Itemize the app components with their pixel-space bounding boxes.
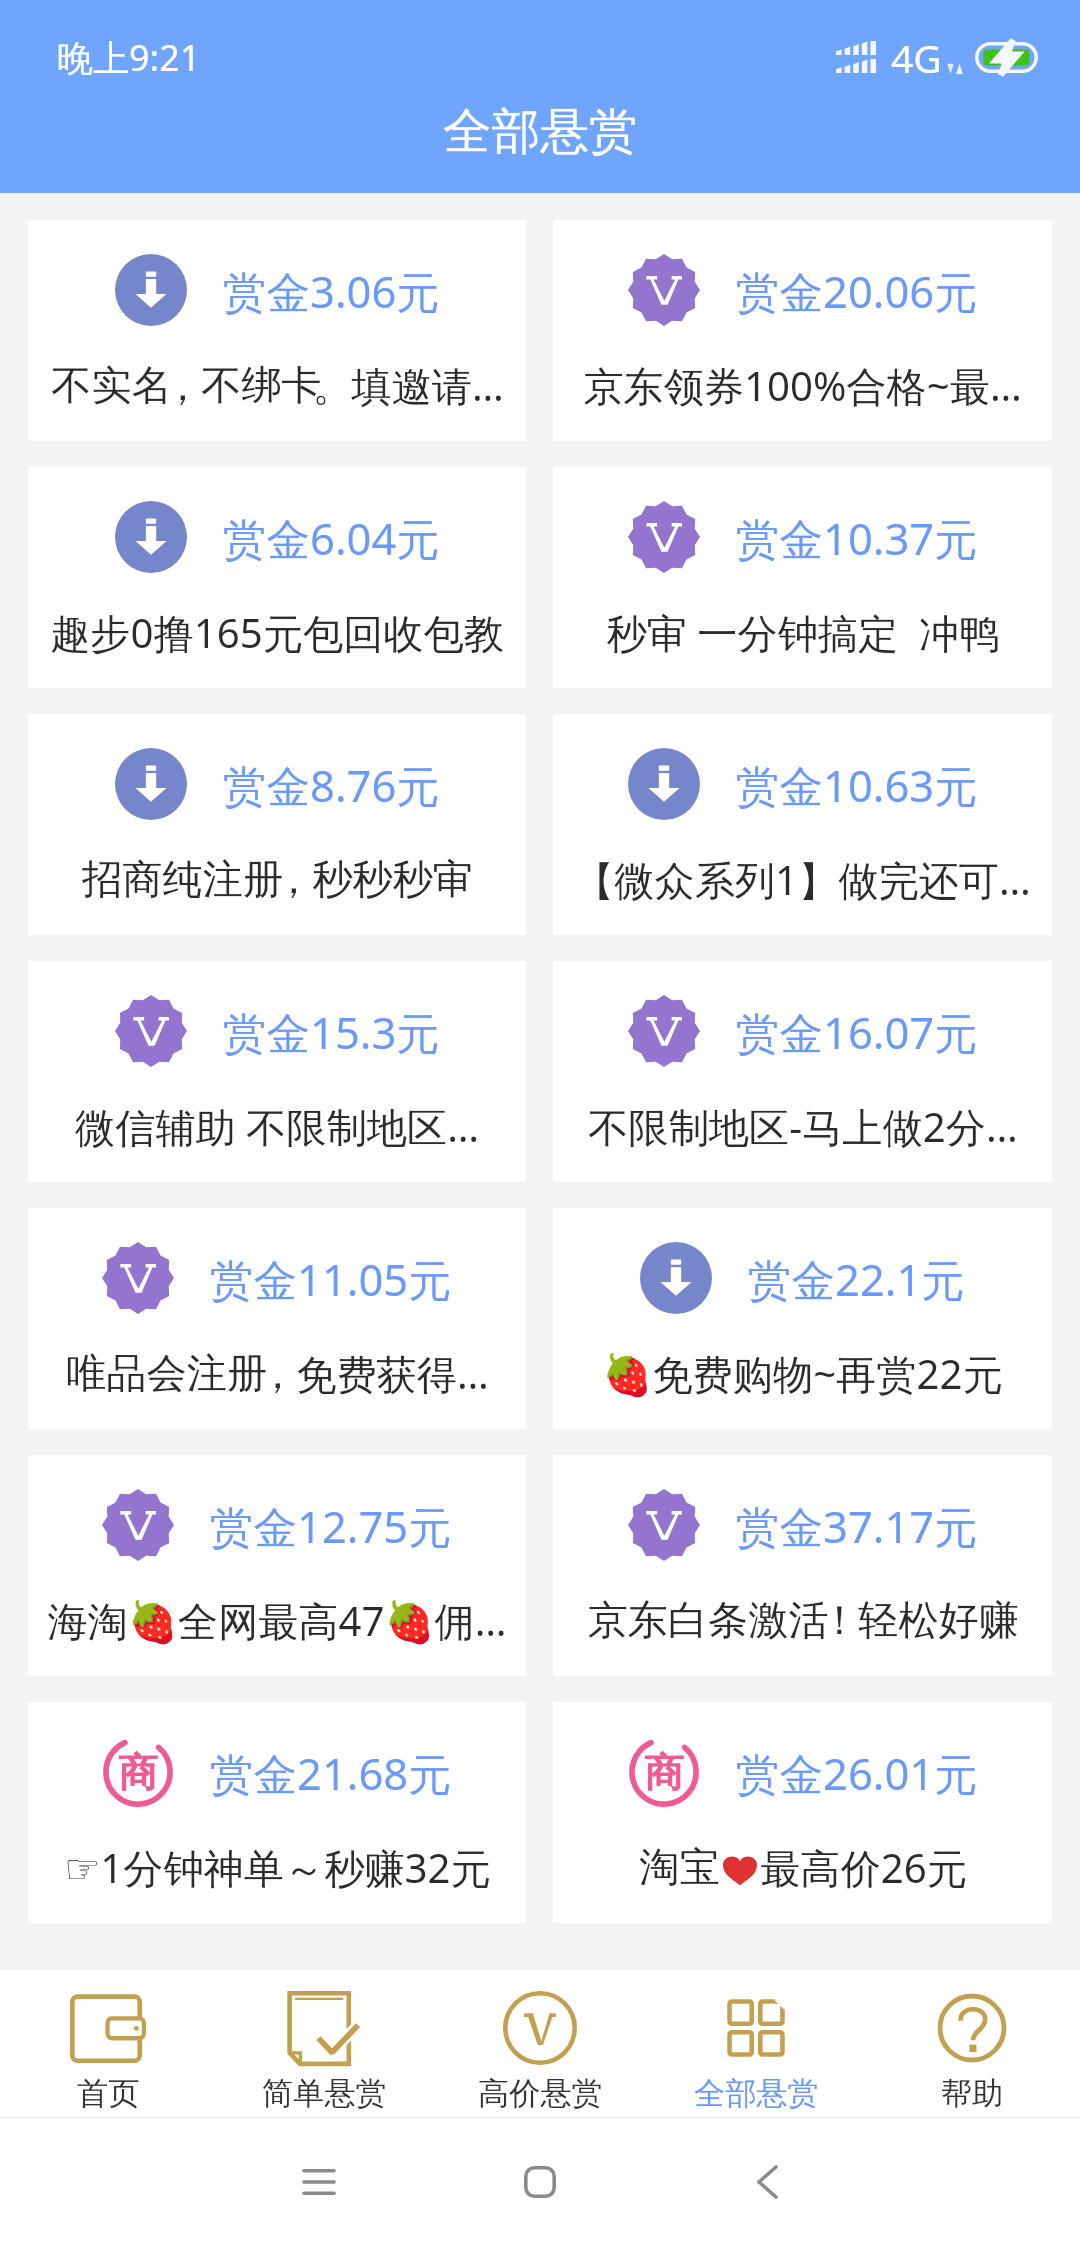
- staticText: 【微众系列1】做完还可…: [574, 852, 1031, 907]
- staticText: 免费获得…: [296, 1346, 489, 1401]
- button[interactable]: Back: [722, 2122, 812, 2242]
- staticText: 晚上9:21: [57, 33, 201, 82]
- staticText: ，: [257, 1349, 286, 1400]
- staticText: 赏金15.3元: [223, 1002, 440, 1061]
- staticText: 赏金8.76元: [223, 755, 440, 814]
- staticText: 微信辅助 不限制地区…: [75, 1099, 479, 1154]
- button[interactable]: 首页: [0, 1975, 216, 2113]
- staticText: 秒审 一分钟搞定 冲鸭: [606, 605, 1000, 660]
- staticText: 赏金22.1元: [748, 1249, 965, 1308]
- button[interactable]: 全部悬赏: [648, 1975, 864, 2113]
- button[interactable]: 赏金10.63元: [553, 714, 1052, 935]
- button[interactable]: 商: [28, 1702, 526, 1923]
- staticText: 帮助: [941, 2074, 1004, 2113]
- staticText: 赏金6.04元: [223, 508, 440, 567]
- button[interactable]: 帮助: [864, 1975, 1080, 2113]
- staticText: 4G: [891, 31, 942, 84]
- staticText: 京东领券100%合格~最…: [583, 358, 1022, 413]
- staticText: ，: [162, 361, 191, 412]
- staticText: ，: [273, 854, 302, 905]
- staticText: 赏金21.68元: [210, 1743, 452, 1802]
- staticText: 轻松好赚: [858, 1595, 1019, 1646]
- button[interactable]: 赏金20.06元: [553, 220, 1052, 441]
- staticText: 赏金11.05元: [210, 1249, 452, 1308]
- staticText: 不实名: [51, 360, 172, 411]
- staticText: 赏金10.63元: [736, 755, 978, 814]
- button[interactable]: 赏金6.04元: [28, 467, 526, 688]
- staticText: ！: [819, 1595, 848, 1646]
- staticText: 赏金12.75元: [210, 1496, 452, 1555]
- staticText: 赏金26.01元: [736, 1743, 978, 1802]
- button[interactable]: 赏金16.07元: [553, 961, 1052, 1182]
- staticText: 赏金3.06元: [223, 261, 440, 320]
- button[interactable]: 赏金15.3元: [28, 961, 526, 1182]
- staticText: 趣步0撸165元包回收包教: [50, 605, 504, 660]
- button[interactable]: 赏金8.76元: [28, 714, 526, 935]
- staticText: 赏金20.06元: [736, 261, 978, 320]
- staticText: ☞1分钟神单～秒赚32元: [64, 1840, 491, 1895]
- staticText: 最高价26元: [760, 1840, 967, 1895]
- button[interactable]: 赏金22.1元: [553, 1208, 1052, 1429]
- button[interactable]: 高价悬赏: [432, 1975, 648, 2113]
- button[interactable]: 赏金3.06元: [28, 220, 526, 441]
- staticText: 京东白条激活: [587, 1595, 829, 1646]
- button[interactable]: Recent apps: [274, 2122, 364, 2242]
- staticText: 高价悬赏: [478, 2074, 603, 2113]
- staticText: 全部悬赏: [443, 101, 638, 162]
- staticText: 唯品会注册: [66, 1348, 267, 1399]
- staticText: 赏金16.07元: [736, 1002, 978, 1061]
- staticText: 赏金10.37元: [736, 508, 978, 567]
- staticText: 不限制地区-马上做2分…: [588, 1099, 1018, 1154]
- staticText: 赏金37.17元: [736, 1496, 978, 1555]
- button[interactable]: 赏金10.37元: [553, 467, 1052, 688]
- staticText: 招商纯注册: [82, 854, 283, 905]
- staticText: 淘宝: [639, 1842, 720, 1893]
- staticText: 简单悬赏: [262, 2074, 387, 2113]
- staticText: 。: [312, 361, 341, 412]
- staticText: 商: [644, 1748, 684, 1798]
- staticText: 秒秒秒审: [312, 854, 473, 905]
- button[interactable]: 赏金37.17元: [553, 1455, 1052, 1676]
- button[interactable]: 赏金11.05元: [28, 1208, 526, 1429]
- button[interactable]: 简单悬赏: [216, 1975, 432, 2113]
- staticText: 填邀请…: [351, 358, 504, 413]
- staticText: 🍓免费购物~再赏22元: [602, 1346, 1003, 1401]
- staticText: 不绑卡: [201, 360, 322, 411]
- staticText: 首页: [77, 2074, 140, 2113]
- staticText: 全部悬赏: [694, 2074, 819, 2113]
- staticText: 商: [118, 1748, 158, 1798]
- staticText: 海淘🍓全网最高47🍓佣…: [47, 1593, 507, 1648]
- button[interactable]: 赏金12.75元: [28, 1455, 526, 1676]
- button[interactable]: Home: [495, 2122, 585, 2242]
- button[interactable]: 商: [553, 1702, 1052, 1923]
